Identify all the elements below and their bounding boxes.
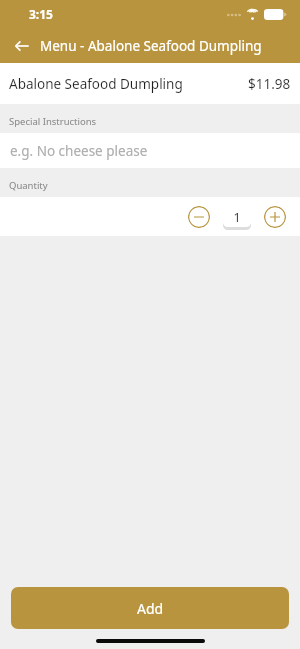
staticText: e.g. No cheese please bbox=[10, 142, 148, 160]
staticText: 1 bbox=[233, 209, 241, 226]
staticText: Abalone Seafood Dumpling bbox=[9, 75, 183, 93]
staticText: Add bbox=[137, 599, 164, 618]
button[interactable]: Decrease quantity bbox=[188, 206, 210, 228]
staticText: Quantity bbox=[9, 179, 48, 192]
button[interactable]: Increase quantity bbox=[264, 206, 286, 228]
staticText: Special Instructions bbox=[9, 115, 97, 128]
button[interactable]: Back bbox=[8, 32, 36, 60]
staticText: Menu - Abalone Seafood Dumpling bbox=[40, 37, 262, 55]
button[interactable]: e.g. No cheese please bbox=[0, 133, 300, 168]
staticText: 3:15 bbox=[29, 6, 53, 22]
button[interactable]: Add bbox=[11, 587, 289, 629]
staticText: $11.98 bbox=[248, 75, 291, 93]
